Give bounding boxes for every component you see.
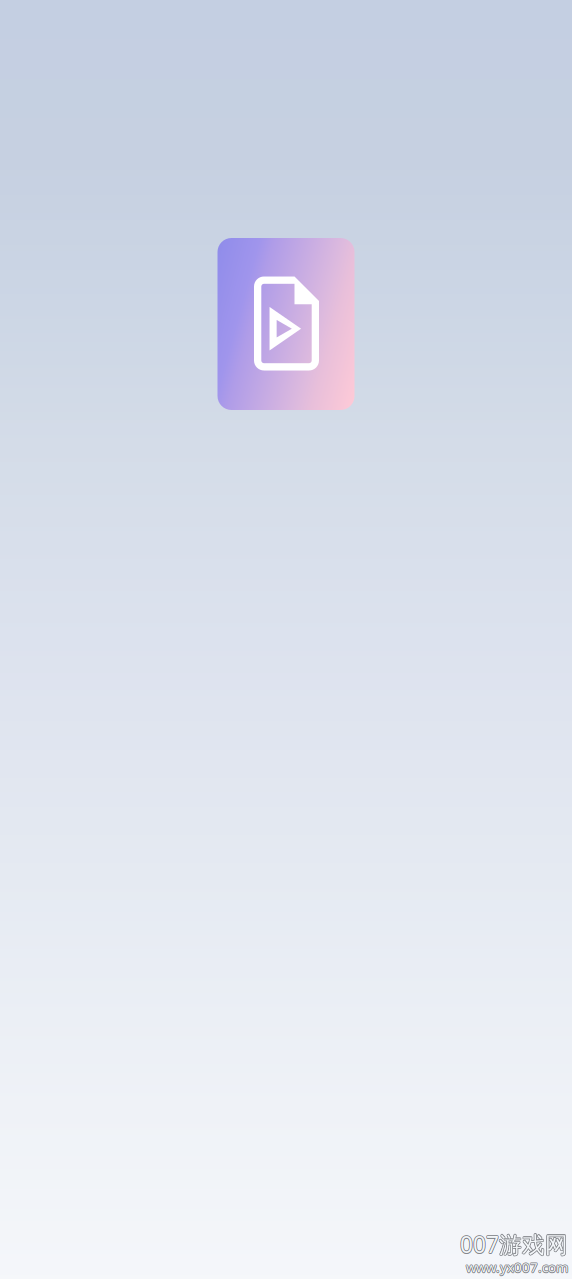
staticText: 007游戏网 xyxy=(460,1230,568,1260)
staticText: www.yx007.com xyxy=(466,1259,568,1277)
staticText: www.yx007.com xyxy=(466,1257,568,1275)
staticText: www.yx007.com xyxy=(465,1259,567,1277)
staticText: www.yx007.com xyxy=(466,1258,568,1276)
staticText: www.yx007.com xyxy=(467,1258,569,1276)
staticText: 007游戏网 xyxy=(461,1229,569,1259)
staticText: www.yx007.com xyxy=(465,1258,567,1276)
staticText: 007游戏网 xyxy=(460,1228,568,1258)
staticText: 007游戏网 xyxy=(461,1230,569,1260)
staticText: www.yx007.com xyxy=(467,1259,569,1277)
staticText: 007游戏网 xyxy=(459,1229,567,1259)
staticText: 007游戏网 xyxy=(459,1229,567,1259)
staticText: www.yx007.com xyxy=(467,1258,569,1275)
staticText: www.yx007.com xyxy=(465,1258,567,1275)
staticText: 007游戏网 xyxy=(459,1230,567,1260)
staticText: 007游戏网 xyxy=(460,1229,568,1259)
staticText: 007游戏网 xyxy=(461,1229,569,1259)
